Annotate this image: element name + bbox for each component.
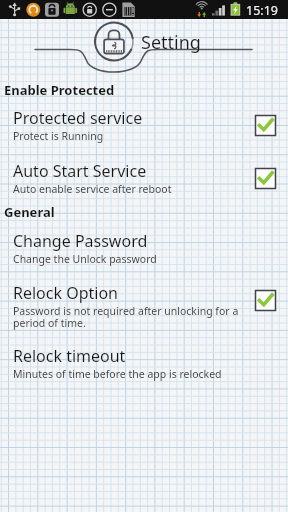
staticText: Password is not required after unlocking… xyxy=(13,304,252,330)
staticText: Change Password xyxy=(13,230,148,252)
button[interactable]: Relock timeout xyxy=(0,345,288,381)
staticText: Enable Protected xyxy=(4,81,115,99)
staticText: Protect is Running xyxy=(13,129,104,143)
button[interactable]: Toggle Relock Option xyxy=(254,289,277,312)
staticText: Auto enable service after reboot xyxy=(13,182,172,196)
staticText: Minutes of time before the app is relock… xyxy=(13,367,222,381)
staticText: Setting xyxy=(141,30,201,55)
staticText: Auto Start Service xyxy=(13,160,147,182)
staticText: Protected service xyxy=(13,107,143,129)
button[interactable]: Relock Option xyxy=(0,282,288,330)
staticText: Relock timeout xyxy=(13,345,126,367)
staticText: General xyxy=(4,203,55,221)
button[interactable]: Toggle Protected service xyxy=(254,114,277,137)
button[interactable]: Toggle Auto Start Service xyxy=(254,167,277,190)
button[interactable]: Auto Start Service xyxy=(0,160,288,196)
staticText: 15:19 xyxy=(246,2,278,19)
staticText: Change the Unlock password xyxy=(13,252,157,266)
button[interactable]: Change Password xyxy=(0,230,288,266)
button[interactable]: Protected service xyxy=(0,107,288,143)
staticText: Relock Option xyxy=(13,282,118,304)
